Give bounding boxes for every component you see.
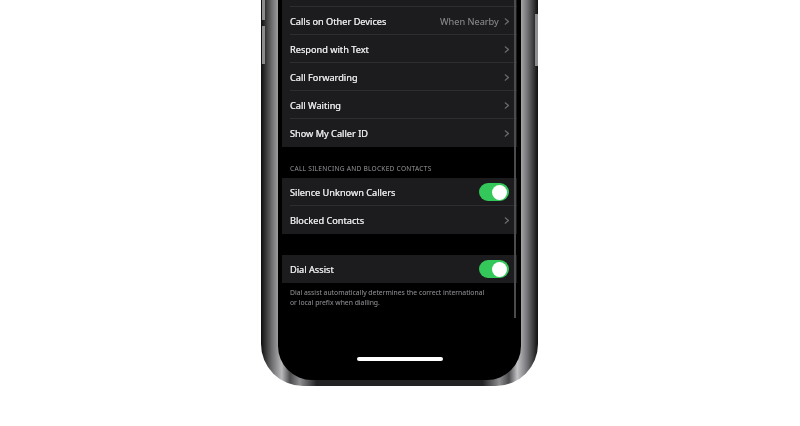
staticText: Show My Caller ID xyxy=(290,127,369,140)
button[interactable]: Call Waiting xyxy=(282,91,517,119)
staticText: Silence Unknown Callers xyxy=(290,186,396,199)
other: Open xyxy=(504,17,509,26)
staticText: Dial Assist xyxy=(290,263,334,276)
button[interactable]: Calls on Other Devices xyxy=(282,7,517,35)
button[interactable]: On xyxy=(479,183,509,201)
staticText: Blocked Contacts xyxy=(290,214,365,227)
button[interactable]: Dial Assist xyxy=(282,255,517,283)
button[interactable]: Silence Unknown Callers xyxy=(282,178,517,206)
button[interactable]: Blocked Contacts xyxy=(282,206,517,234)
button[interactable]: Call Forwarding xyxy=(282,63,517,91)
staticText: Calls on Other Devices xyxy=(290,15,387,28)
other: Open xyxy=(504,216,509,225)
other: Open xyxy=(504,73,509,82)
button[interactable]: Respond with Text xyxy=(282,35,517,63)
staticText: When Nearby xyxy=(440,15,499,28)
other: Open xyxy=(504,129,509,138)
staticText: Respond with Text xyxy=(290,43,369,56)
button[interactable]: SMS/Call Reporting xyxy=(282,0,517,7)
other: Open xyxy=(504,101,509,110)
staticText: Call Forwarding xyxy=(290,71,358,84)
button[interactable]: On xyxy=(479,260,509,278)
staticText: Call Waiting xyxy=(290,99,341,112)
staticText: Dial assist automatically determines the… xyxy=(290,288,485,297)
staticText: CALL SILENCING AND BLOCKED CONTACTS xyxy=(290,164,432,173)
button[interactable]: Show My Caller ID xyxy=(282,119,517,147)
staticText: or local prefix when dialling. xyxy=(290,298,380,307)
other: Open xyxy=(504,45,509,54)
